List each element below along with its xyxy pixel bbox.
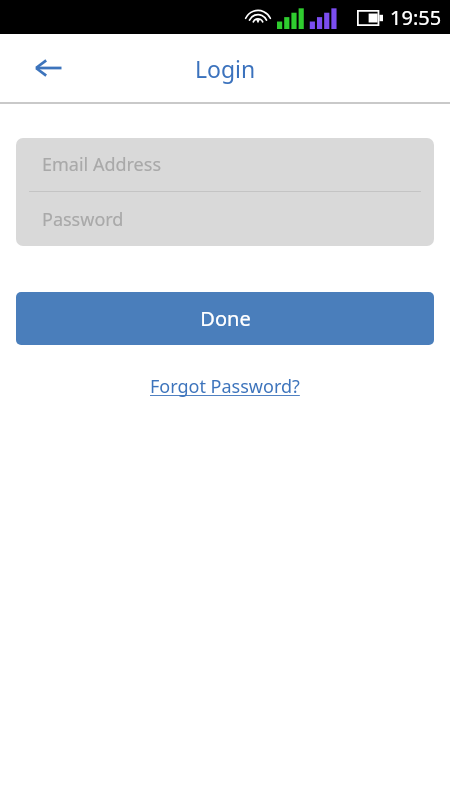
staticText: Email Address xyxy=(42,152,162,177)
staticText: Forgot Password? xyxy=(150,374,300,399)
staticText: Done xyxy=(200,305,251,332)
button[interactable]: Email Address xyxy=(16,138,434,191)
staticText: Login xyxy=(195,53,256,84)
button[interactable]: Done xyxy=(16,292,434,345)
button[interactable]: Back xyxy=(22,42,74,94)
button[interactable]: Forgot Password? xyxy=(144,372,306,401)
button[interactable]: Password xyxy=(16,192,434,246)
staticText: 19:55 xyxy=(390,4,442,31)
staticText: Password xyxy=(42,207,124,232)
